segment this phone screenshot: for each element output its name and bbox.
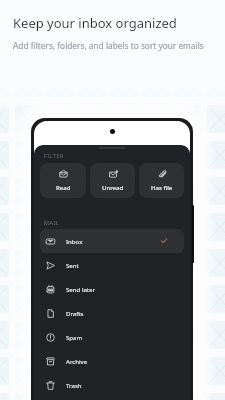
staticText: Drafts <box>66 309 84 317</box>
button[interactable]: Drafts <box>40 301 184 325</box>
button[interactable]: Unread <box>90 163 135 198</box>
staticText: Send later <box>66 285 96 293</box>
staticText: Has file <box>151 184 173 192</box>
button[interactable]: Inbox <box>40 229 184 253</box>
button[interactable]: Trash <box>40 373 184 397</box>
button[interactable]: Sent <box>40 253 184 277</box>
staticText: Unread <box>102 184 124 192</box>
staticText: Add filters, folders, and labels to sort… <box>13 40 204 51</box>
button[interactable]: Read <box>40 163 86 198</box>
staticText: Trash <box>66 381 82 389</box>
button[interactable]: Has file <box>139 163 184 198</box>
staticText: Archive <box>66 357 88 365</box>
staticText: Spam <box>66 333 83 341</box>
staticText: MAIL <box>44 219 60 226</box>
staticText: FILTER <box>44 152 65 159</box>
staticText: Inbox <box>66 237 83 245</box>
button[interactable]: Spam <box>40 325 184 349</box>
staticText: Read <box>56 184 71 192</box>
staticText: Keep your inbox organized <box>13 14 177 32</box>
button[interactable]: Send later <box>40 277 184 301</box>
staticText: Sent <box>66 261 79 269</box>
button[interactable]: Archive <box>40 349 184 373</box>
